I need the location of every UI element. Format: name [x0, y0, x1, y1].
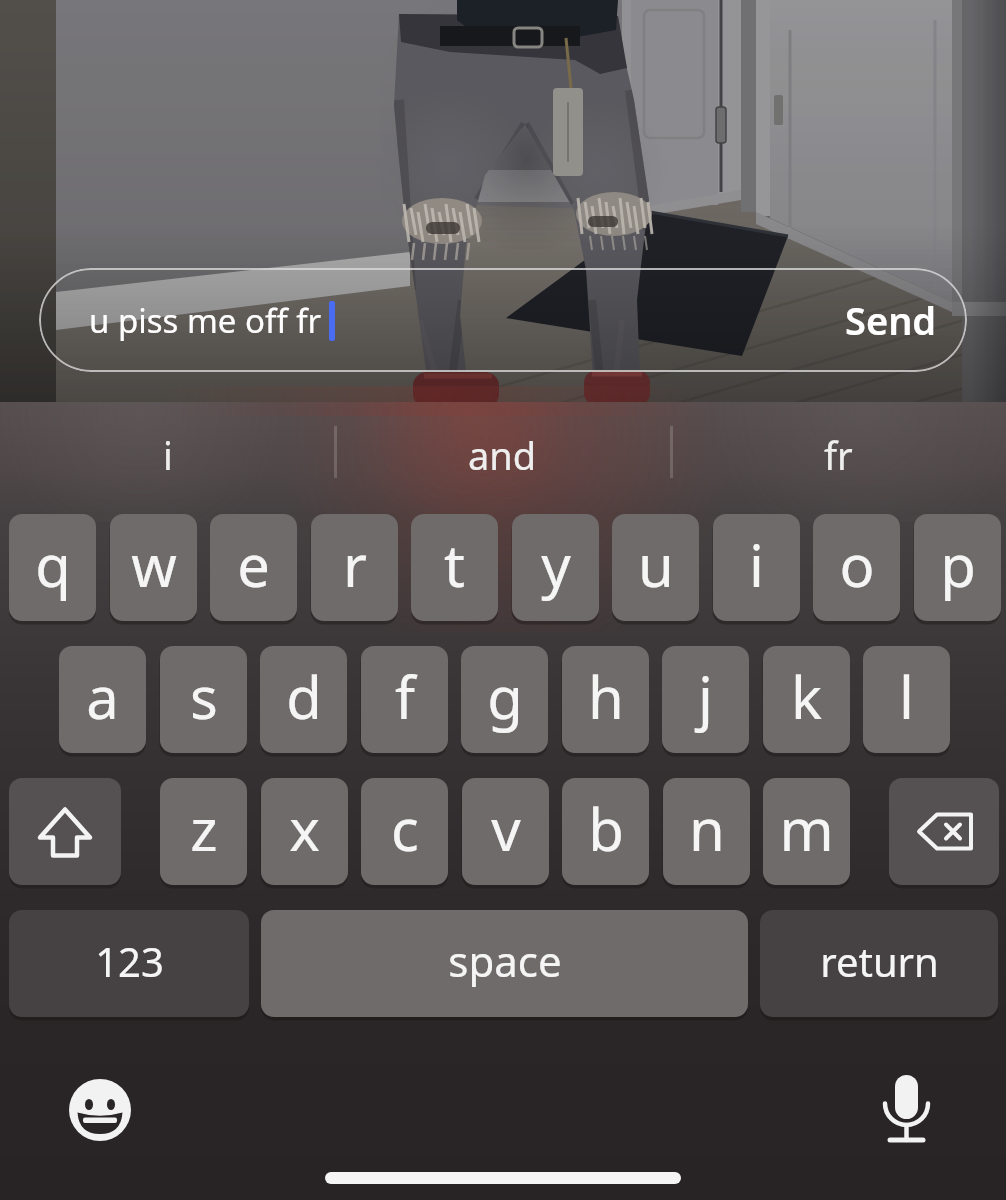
button[interactable]: i	[713, 514, 800, 621]
button[interactable]: d	[260, 646, 347, 753]
button[interactable]	[66, 1076, 134, 1144]
staticText: w	[131, 525, 177, 604]
button[interactable]: a	[59, 646, 146, 753]
staticText: s	[190, 657, 218, 736]
button[interactable]: fr	[671, 405, 1006, 505]
button[interactable]: space	[261, 910, 748, 1017]
button[interactable]: w	[110, 514, 197, 621]
button[interactable]	[878, 1066, 936, 1152]
staticText: u piss me off fr	[89, 298, 322, 343]
staticText: 123	[95, 934, 164, 988]
staticText: p	[940, 525, 976, 604]
button[interactable]: n	[663, 778, 750, 885]
staticText: fr	[824, 429, 853, 481]
button[interactable]: g	[461, 646, 548, 753]
staticText: Send	[845, 294, 937, 346]
button[interactable]: return	[760, 910, 998, 1017]
staticText: r	[343, 525, 367, 604]
button[interactable]	[889, 778, 999, 885]
staticText: q	[35, 525, 71, 604]
staticText: t	[444, 525, 465, 604]
button[interactable]: e	[210, 514, 297, 621]
button[interactable]: p	[914, 514, 1001, 621]
button[interactable]: m	[763, 778, 850, 885]
staticText: i	[749, 525, 764, 604]
button[interactable]: o	[813, 514, 900, 621]
button[interactable]: k	[763, 646, 850, 753]
staticText: y	[541, 525, 571, 604]
button[interactable]: and	[335, 405, 670, 505]
button[interactable]: j	[662, 646, 749, 753]
staticText: z	[190, 789, 218, 868]
button[interactable]: u piss me off fr	[39, 268, 967, 372]
button[interactable]: b	[562, 778, 649, 885]
staticText: return	[820, 934, 939, 988]
staticText: l	[899, 657, 914, 736]
staticText: u	[638, 525, 674, 604]
button[interactable]: c	[361, 778, 448, 885]
staticText: j	[698, 657, 713, 736]
button[interactable]: t	[411, 514, 498, 621]
staticText: f	[395, 657, 415, 736]
staticText: g	[487, 657, 523, 736]
button[interactable]: q	[9, 514, 96, 621]
button[interactable]: z	[160, 778, 247, 885]
button[interactable]: h	[562, 646, 649, 753]
button[interactable]	[9, 778, 121, 885]
button[interactable]: r	[311, 514, 398, 621]
staticText: a	[86, 657, 119, 736]
staticText: h	[588, 657, 624, 736]
button[interactable]: s	[160, 646, 247, 753]
staticText: space	[448, 932, 562, 989]
staticText: c	[391, 789, 419, 868]
button[interactable]: l	[863, 646, 950, 753]
staticText: v	[491, 789, 521, 868]
button[interactable]: i	[0, 405, 335, 505]
button[interactable]: x	[261, 778, 348, 885]
staticText: k	[791, 657, 822, 736]
button[interactable]: u	[612, 514, 699, 621]
staticText: e	[237, 525, 270, 604]
staticText: and	[468, 429, 537, 481]
button[interactable]: v	[462, 778, 549, 885]
staticText: o	[839, 525, 875, 604]
staticText: n	[689, 789, 725, 868]
button[interactable]: 123	[9, 910, 249, 1017]
staticText: d	[286, 657, 322, 736]
staticText: x	[289, 789, 320, 868]
staticText: b	[588, 789, 624, 868]
staticText: m	[779, 789, 834, 868]
button[interactable]: y	[512, 514, 599, 621]
staticText: i	[163, 429, 173, 481]
button[interactable]: f	[361, 646, 448, 753]
